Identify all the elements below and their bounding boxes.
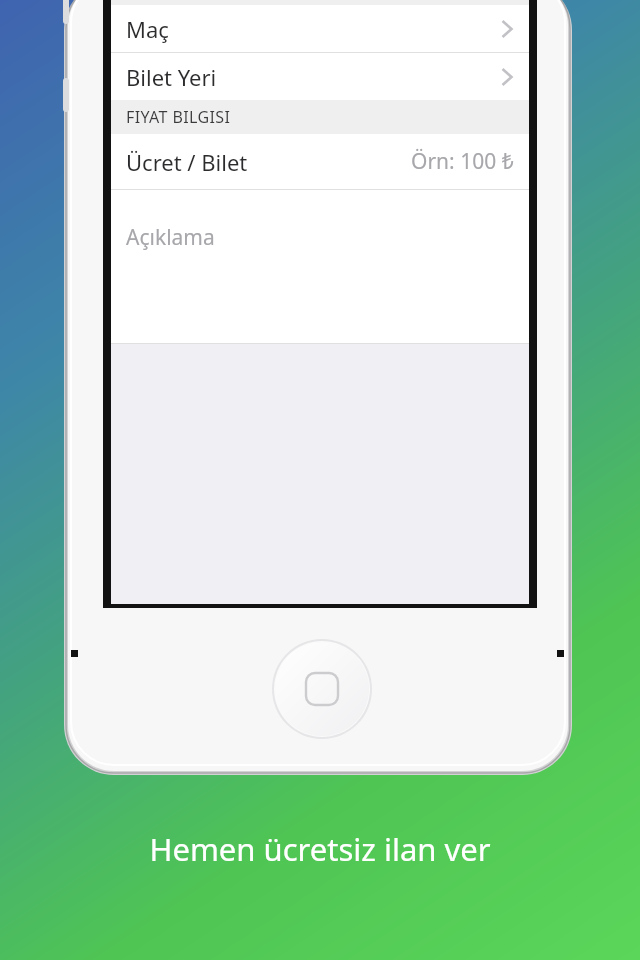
button[interactable]: Ücret / Bilet xyxy=(111,134,529,189)
button[interactable]: Home xyxy=(272,639,372,739)
other: Open xyxy=(500,18,514,40)
button[interactable]: Açıklama xyxy=(111,190,529,343)
other: Open xyxy=(500,66,514,88)
button[interactable]: Maç xyxy=(111,5,529,52)
staticText: Ücret / Bilet xyxy=(126,147,411,177)
staticText: Örn: 100 ₺ xyxy=(411,147,514,176)
button[interactable]: Bilet Yeri xyxy=(111,53,529,100)
staticText: Açıklama xyxy=(126,223,215,252)
staticText: FIYAT BILGISI xyxy=(126,106,231,128)
staticText: Maç xyxy=(126,14,500,44)
staticText: Bilet Yeri xyxy=(126,62,500,92)
staticText: Hemen ücretsiz ilan ver xyxy=(0,828,640,870)
